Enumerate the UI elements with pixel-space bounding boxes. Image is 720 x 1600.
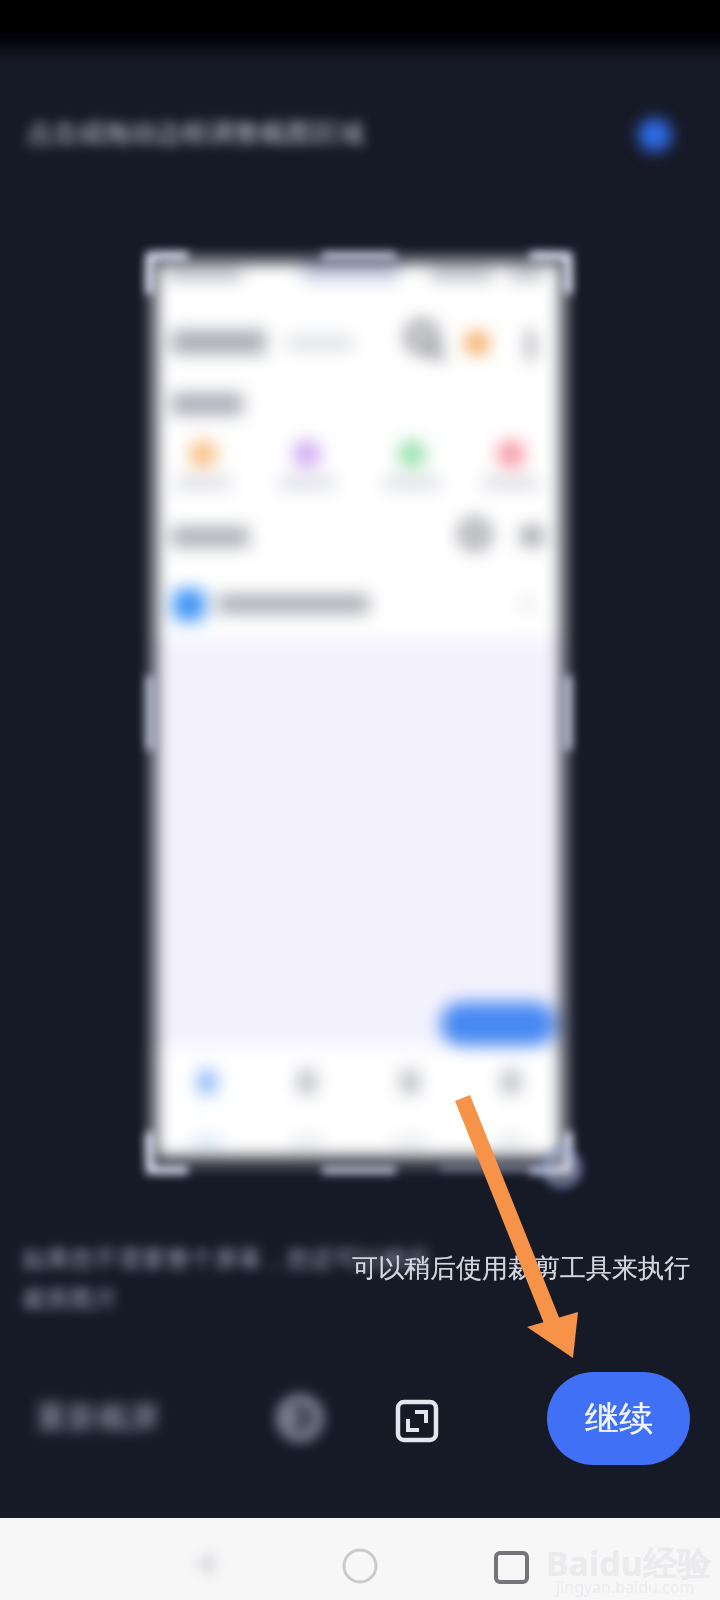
button[interactable]: Share — [620, 100, 690, 170]
button[interactable]: Home — [328, 1526, 392, 1590]
staticText: jingyan.baidu.com — [556, 1576, 695, 1598]
button[interactable]: Back — [172, 1526, 236, 1590]
button[interactable]: Recents — [480, 1526, 544, 1590]
staticText: 点击或拖动边框调整截图区域 — [26, 117, 364, 150]
button[interactable]: 继续 — [547, 1372, 690, 1465]
staticText: 如果您不需要整个屏幕，您还可以稍后 — [22, 1244, 430, 1274]
staticText: 可以稍后使用裁剪工具来执行 — [352, 1252, 690, 1285]
button[interactable]: 如果您不需要整个屏幕，您还可以稍后 — [22, 1244, 430, 1314]
button[interactable]: 点击或拖动边框调整截图区域 — [26, 117, 364, 150]
button[interactable]: 重新截屏 — [36, 1398, 160, 1437]
staticText: 裁剪图片 — [22, 1284, 118, 1314]
staticText: 继续 — [585, 1397, 653, 1440]
button[interactable]: Expand — [385, 1389, 449, 1453]
staticText: 重新截屏 — [36, 1398, 160, 1437]
staticText: Baidu经验 — [546, 1540, 711, 1586]
button[interactable]: Mosaic — [268, 1386, 332, 1450]
